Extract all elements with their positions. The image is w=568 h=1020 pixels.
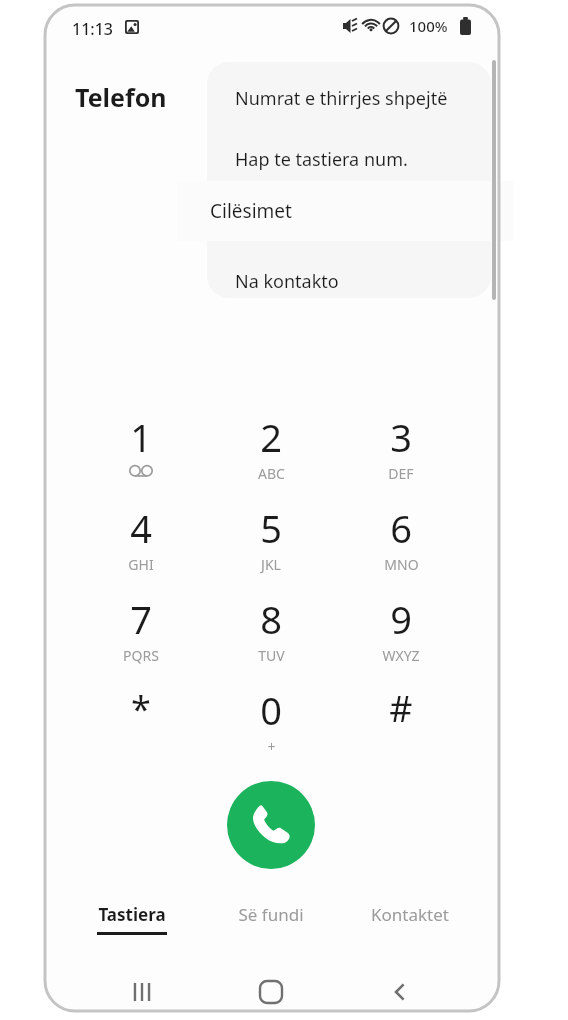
button[interactable]: 7: [86, 593, 196, 677]
staticText: +: [267, 737, 276, 756]
button[interactable]: 5: [216, 502, 326, 586]
staticText: WXYZ: [382, 646, 420, 665]
staticText: 5: [260, 502, 282, 554]
button[interactable]: Na kontakto: [207, 251, 491, 298]
button[interactable]: *: [86, 684, 196, 768]
staticText: Numrat e thirrjes shpejtë: [235, 86, 448, 111]
staticText: ABC: [258, 464, 285, 483]
staticText: Cilësimet: [210, 198, 292, 224]
staticText: TUV: [258, 646, 285, 665]
staticText: *: [131, 684, 151, 733]
staticText: 8: [260, 593, 282, 645]
staticText: Së fundi: [238, 903, 304, 926]
staticText: Hap te tastiera num.: [235, 147, 408, 172]
staticText: 0: [260, 684, 282, 736]
button[interactable]: Cilësimet: [177, 181, 513, 241]
button[interactable]: Back: [372, 970, 428, 1014]
staticText: 3: [390, 411, 412, 463]
staticText: 2: [260, 411, 282, 463]
staticText: 7: [130, 593, 152, 645]
button[interactable]: Recents: [114, 970, 170, 1014]
staticText: 4: [130, 502, 152, 554]
staticText: GHI: [128, 555, 154, 574]
button[interactable]: 9: [346, 593, 456, 677]
button[interactable]: Call: [227, 781, 315, 869]
staticText: 6: [390, 502, 412, 554]
button[interactable]: Hap te tastiera num.: [207, 129, 491, 189]
staticText: Tastiera: [98, 903, 166, 926]
button[interactable]: 1: [86, 411, 196, 495]
button[interactable]: Së fundi: [201, 903, 341, 951]
staticText: Telefon: [75, 80, 167, 114]
button[interactable]: 4: [86, 502, 196, 586]
button[interactable]: 2: [216, 411, 326, 495]
staticText: DEF: [388, 464, 414, 483]
staticText: 1: [130, 411, 152, 463]
staticText: Kontaktet: [371, 903, 449, 926]
button[interactable]: 8: [216, 593, 326, 677]
staticText: 9: [390, 593, 412, 645]
staticText: 11:13: [72, 18, 113, 40]
staticText: MNO: [384, 555, 419, 574]
button[interactable]: Numrat e thirrjes shpejtë: [207, 68, 491, 128]
staticText: 100%: [409, 16, 448, 36]
button[interactable]: Tastiera: [62, 903, 202, 951]
button[interactable]: 0: [216, 684, 326, 768]
staticText: #: [389, 684, 413, 733]
button[interactable]: #: [346, 684, 456, 768]
button[interactable]: 6: [346, 502, 456, 586]
staticText: PQRS: [123, 646, 159, 665]
button[interactable]: 3: [346, 411, 456, 495]
button[interactable]: Kontaktet: [340, 903, 480, 951]
staticText: Na kontakto: [235, 269, 339, 294]
button[interactable]: Home: [243, 970, 299, 1014]
staticText: JKL: [261, 555, 281, 574]
